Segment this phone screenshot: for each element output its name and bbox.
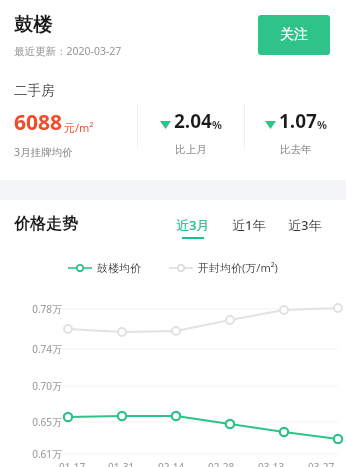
button[interactable]: 近1年 — [232, 216, 266, 237]
staticText: 0.78万 — [16, 302, 62, 316]
staticText: 01-17 — [59, 460, 86, 467]
staticText: 0.74万 — [16, 342, 62, 356]
staticText: 近1年 — [232, 216, 266, 234]
staticText: % — [317, 117, 327, 132]
button[interactable]: 关注 — [258, 15, 330, 55]
staticText: 3月挂牌均价 — [14, 145, 73, 159]
staticText: 近3年 — [288, 216, 322, 234]
staticText: 0.61万 — [16, 447, 62, 461]
staticText: 02-28 — [208, 460, 235, 467]
button[interactable]: 近3年 — [288, 216, 322, 237]
staticText: 0.65万 — [16, 415, 62, 429]
staticText: 比去年 — [280, 143, 312, 156]
button[interactable]: 近3月 — [176, 216, 210, 239]
staticText: 0.70万 — [16, 379, 62, 393]
staticText: 最近更新：2020-03-27 — [14, 44, 122, 58]
staticText: 近3月 — [176, 216, 210, 234]
staticText: 1.07 — [279, 108, 317, 134]
staticText: 03-27 — [308, 460, 335, 467]
staticText: 02-14 — [158, 460, 185, 467]
staticText: 二手房 — [14, 82, 55, 99]
staticText: 6088 — [14, 108, 63, 137]
staticText: % — [212, 117, 222, 132]
staticText: 关注 — [280, 26, 308, 44]
staticText: 01-31 — [108, 460, 135, 467]
staticText: 2.04 — [174, 108, 212, 134]
staticText: 比上月 — [175, 143, 207, 156]
staticText: 价格走势 — [14, 214, 78, 234]
staticText: 03-13 — [258, 460, 285, 467]
staticText: 开封均价(万/m²) — [198, 260, 278, 275]
staticText: 元/m² — [64, 120, 94, 135]
staticText: 鼓楼 — [14, 13, 52, 37]
staticText: 鼓楼均价 — [97, 261, 141, 275]
